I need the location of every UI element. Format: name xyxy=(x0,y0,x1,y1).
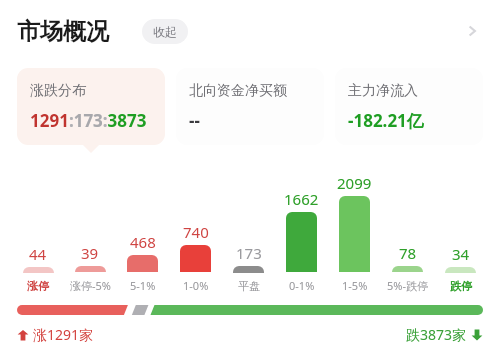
staticText: 468 xyxy=(130,232,156,252)
staticText: 跌3873家 xyxy=(406,325,467,344)
staticText: 0-1% xyxy=(289,278,315,293)
staticText: 平盘 xyxy=(238,279,260,293)
button[interactable]: 市场概况 xyxy=(0,0,499,62)
button[interactable]: 收起 xyxy=(142,19,188,44)
staticText: 39 xyxy=(81,243,99,263)
button[interactable]: 1662 xyxy=(275,168,328,293)
staticText: 5%-跌停 xyxy=(387,278,428,293)
staticText: 涨1291家 xyxy=(33,325,94,344)
staticText: 北向资金净买额 xyxy=(189,82,287,100)
button[interactable]: 涨跌分布 xyxy=(17,68,165,145)
staticText: 173 xyxy=(236,243,262,263)
staticText: 1291:173:3873 xyxy=(30,109,147,132)
staticText: 市场概况 xyxy=(17,17,109,46)
button[interactable]: 78 xyxy=(381,168,434,293)
button[interactable]: 北向资金净买额 xyxy=(176,68,324,145)
staticText: 44 xyxy=(29,244,47,264)
button[interactable]: 740 xyxy=(169,168,222,293)
button[interactable]: 34 xyxy=(434,168,487,293)
staticText: 78 xyxy=(399,243,417,263)
button[interactable]: 39 xyxy=(64,168,116,293)
staticText: 1-0% xyxy=(183,278,209,293)
staticText: 跌停 xyxy=(450,279,472,293)
staticText: 涨停 xyxy=(27,279,49,293)
staticText: 34 xyxy=(452,244,470,264)
staticText: 涨跌分布 xyxy=(30,82,86,100)
button[interactable]: 更多 xyxy=(455,14,489,48)
staticText: -182.21亿 xyxy=(348,109,424,132)
staticText: 1662 xyxy=(284,189,319,209)
staticText: 5-1% xyxy=(130,278,156,293)
staticText: 主力净流入 xyxy=(348,82,418,100)
button[interactable]: 2099 xyxy=(328,168,381,293)
staticText: 涨停-5% xyxy=(70,278,111,293)
button[interactable]: 173 xyxy=(222,168,275,293)
staticText: 收起 xyxy=(153,24,177,39)
staticText: 740 xyxy=(183,222,209,242)
staticText: -- xyxy=(189,109,200,132)
staticText: 2099 xyxy=(337,173,372,193)
button[interactable]: 468 xyxy=(116,168,169,293)
button[interactable]: 主力净流入 xyxy=(335,68,483,145)
button[interactable]: 涨1291家 xyxy=(0,305,499,348)
button[interactable]: 44 xyxy=(12,168,64,293)
staticText: 1-5% xyxy=(342,278,368,293)
